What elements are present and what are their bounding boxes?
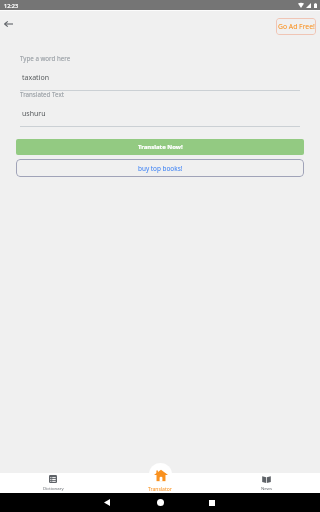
button[interactable]: Translate Now! — [16, 139, 304, 155]
staticText: taxation — [22, 73, 49, 83]
button[interactable]: Home — [150, 493, 170, 512]
button[interactable]: News — [213, 473, 320, 493]
button[interactable]: Recents — [202, 493, 222, 512]
staticText: News — [261, 485, 273, 491]
staticText: Translator — [148, 486, 172, 492]
button[interactable]: Dictionary — [0, 473, 106, 493]
staticText: Translate Now! — [138, 143, 183, 151]
staticText: buy top books! — [138, 164, 183, 173]
button[interactable]: Translator — [148, 463, 172, 492]
button[interactable]: Go Ad Free! — [276, 18, 316, 35]
staticText: Go Ad Free! — [278, 22, 315, 31]
button[interactable]: buy top books! — [16, 159, 304, 177]
staticText: ushuru — [22, 109, 46, 119]
staticText: 12:23 — [4, 2, 19, 9]
button[interactable]: Back — [97, 493, 117, 512]
staticText: Dictionary — [43, 485, 64, 491]
button[interactable]: Back — [0, 16, 16, 32]
staticText: Type a word here — [20, 54, 71, 62]
staticText: Translated Text — [20, 90, 64, 98]
